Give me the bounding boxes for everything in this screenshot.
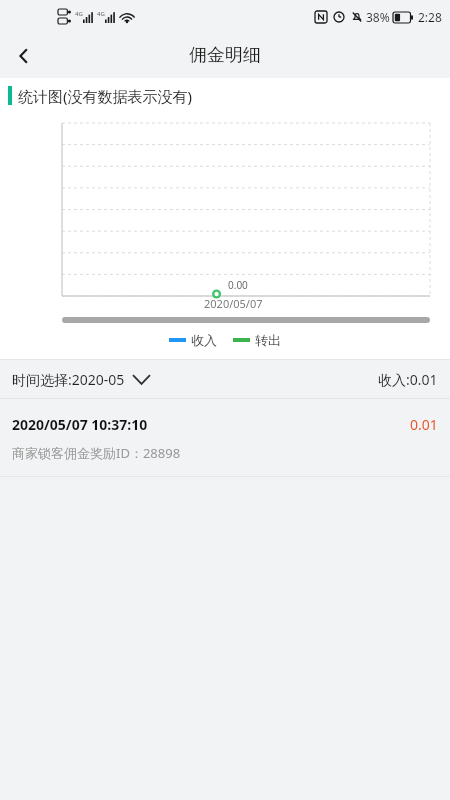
staticText: 时间选择:2020-05 <box>12 370 125 389</box>
staticText: 商家锁客佣金奖励ID：28898 <box>12 444 181 462</box>
staticText: 4G <box>75 10 83 18</box>
staticText: 2:28 <box>418 9 442 25</box>
staticText: 0.01 <box>410 415 438 434</box>
staticText: 38% <box>366 9 390 25</box>
staticText: 收入:0.01 <box>378 370 438 389</box>
staticText: 统计图(没有数据表示没有) <box>18 86 193 106</box>
staticText: 转出 <box>255 332 281 348</box>
staticText: 2020/05/07 <box>204 296 263 311</box>
staticText: 2020/05/07 10:37:10 <box>12 415 148 434</box>
staticText: 0.00 <box>228 278 248 292</box>
staticText: 佣金明细 <box>189 44 261 67</box>
staticText: 收入 <box>191 332 217 348</box>
button[interactable]: Back <box>0 33 48 78</box>
button[interactable]: 时间选择:2020-05 <box>0 360 450 398</box>
button[interactable]: 2020/05/07 10:37:10 <box>0 399 450 476</box>
staticText: 4G <box>97 10 105 18</box>
